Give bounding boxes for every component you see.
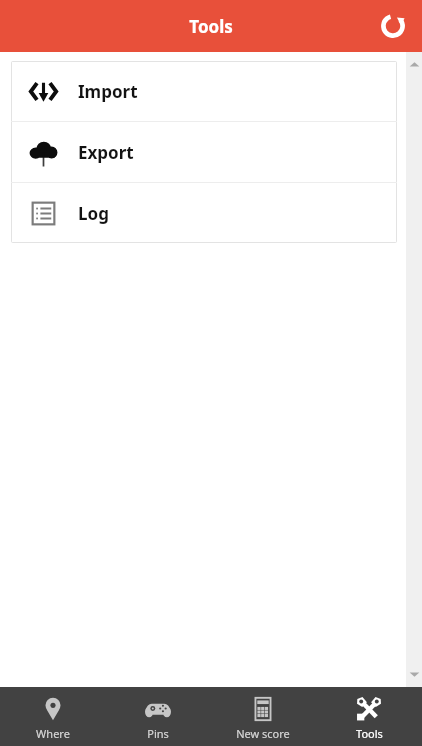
button[interactable]: Tools [316,687,422,746]
staticText: Import [78,80,138,103]
button[interactable]: New score [210,687,316,746]
button[interactable]: Import [11,61,397,121]
staticText: Pins [147,726,169,741]
button[interactable]: Pins [105,687,210,746]
button[interactable]: Refresh [370,3,416,49]
staticText: Tools [189,15,233,38]
staticText: Log [78,202,109,225]
button[interactable]: Export [11,122,397,182]
staticText: New score [236,726,290,741]
staticText: Where [36,726,70,741]
staticText: Tools [356,726,383,741]
staticText: Export [78,141,134,164]
button[interactable]: Where [0,687,105,746]
button[interactable]: Log [11,183,397,243]
